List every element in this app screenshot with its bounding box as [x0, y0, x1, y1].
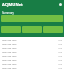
staticText: 12.5 — [58, 67, 62, 70]
button[interactable] — [22, 26, 42, 33]
button[interactable]: Item title here — [2, 66, 62, 70]
staticText: ACJMUNet — [2, 2, 23, 7]
staticText: Item title here — [2, 39, 17, 42]
button[interactable]: Item title here — [2, 42, 62, 46]
button[interactable]: Item title here — [2, 46, 62, 50]
staticText: 12.5 — [58, 39, 62, 42]
staticText: Item title here — [2, 67, 17, 70]
staticText: 12.5 — [58, 55, 62, 58]
button[interactable]: ACJMUNet — [2, 0, 62, 9]
button[interactable]: Item title here — [2, 54, 62, 58]
button[interactable]: Item title here — [2, 58, 62, 62]
staticText: 12.5 — [58, 47, 62, 50]
staticText: Item title here — [2, 59, 17, 62]
button[interactable]: Item title here — [2, 38, 62, 42]
staticText: 12.5 — [58, 43, 62, 46]
staticText: 12.5 — [58, 63, 62, 66]
staticText: Item title here — [2, 43, 17, 46]
staticText: Item title here — [2, 63, 17, 66]
staticText: Item title here — [2, 55, 17, 58]
button[interactable]: Item title here — [2, 62, 62, 66]
button[interactable]: Item title here — [2, 50, 62, 54]
button[interactable] — [1, 26, 21, 33]
staticText: Item title here — [2, 47, 17, 50]
button[interactable] — [43, 26, 63, 33]
button[interactable]: Menu — [59, 3, 62, 6]
staticText: Summary — [2, 11, 14, 15]
staticText: 12.5 — [58, 51, 62, 54]
staticText: Item title here — [2, 51, 17, 54]
staticText: 12.5 — [58, 59, 62, 62]
